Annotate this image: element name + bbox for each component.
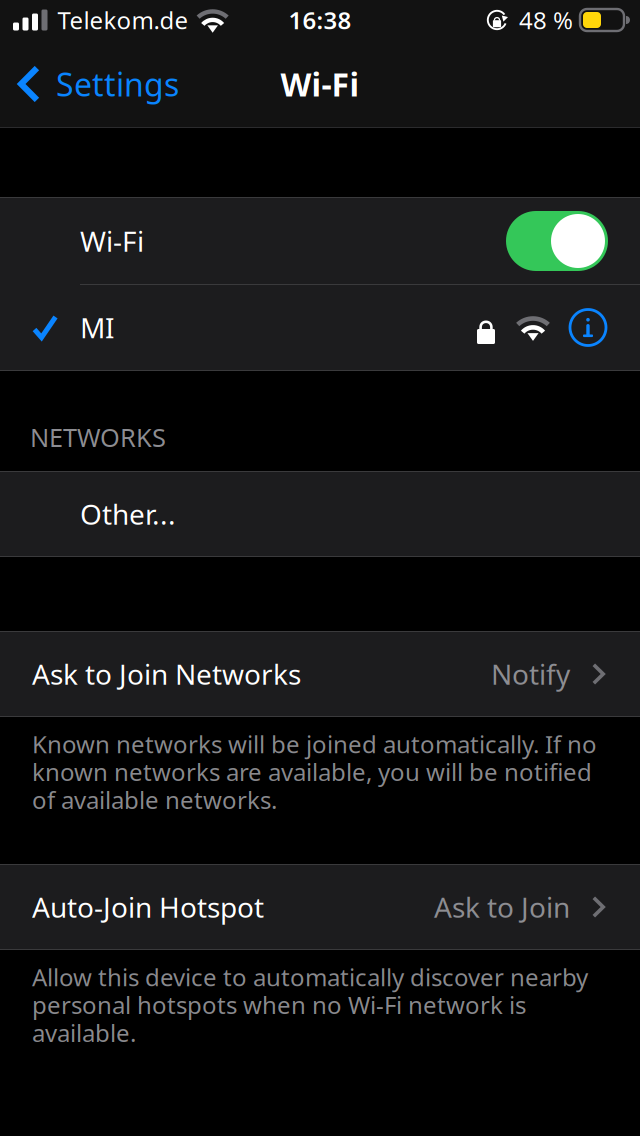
button[interactable]: MI (0, 285, 640, 370)
staticText: 48 % (519, 4, 573, 36)
staticText: Telekom.de (57, 4, 188, 36)
staticText: Known networks will be joined automatica… (32, 728, 597, 816)
button[interactable]: Settings (0, 40, 193, 128)
staticText: Ask to Join (434, 888, 570, 926)
staticText: Ask to Join Networks (32, 655, 301, 693)
staticText: MI (80, 309, 114, 346)
button[interactable]: Wi-Fi (0, 198, 640, 284)
staticText: Wi-Fi (280, 63, 359, 105)
staticText: Allow this device to automatically disco… (32, 961, 588, 1049)
staticText: NETWORKS (30, 420, 166, 454)
button[interactable]: Ask to Join Networks (0, 632, 640, 716)
button[interactable]: Auto-Join Hotspot (0, 865, 640, 949)
staticText: 16:38 (288, 4, 351, 36)
staticText: Notify (491, 655, 570, 693)
button[interactable]: Other... (0, 472, 640, 556)
staticText: Wi-Fi (80, 222, 144, 260)
staticText: Other... (80, 495, 176, 533)
staticText: Settings (56, 63, 179, 105)
staticText: Auto-Join Hotspot (32, 888, 264, 926)
